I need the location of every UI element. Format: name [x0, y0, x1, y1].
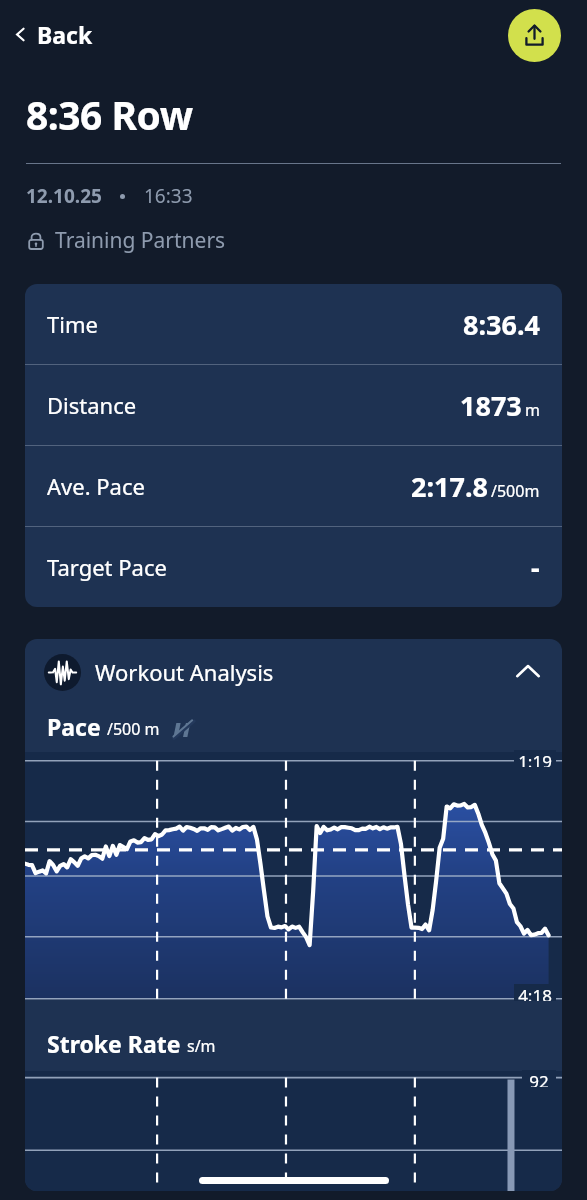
staticText: 1873 — [460, 387, 522, 424]
staticText: Time — [47, 309, 98, 339]
staticText: /500 m — [107, 718, 160, 740]
staticText: 1:19 — [514, 750, 556, 767]
staticText: Workout Analysis — [95, 657, 274, 687]
staticText: 16:33 — [144, 183, 193, 209]
button[interactable]: Workout Analysis — [25, 639, 562, 705]
button[interactable]: Share workout — [508, 9, 561, 62]
button[interactable]: Training Partners — [24, 223, 228, 258]
button[interactable]: Target Pace — [25, 527, 562, 607]
staticText: Target Pace — [47, 552, 167, 582]
staticText: m — [525, 399, 540, 421]
button[interactable]: Back — [0, 13, 107, 56]
staticText: 8:36.4 — [463, 306, 540, 343]
staticText: Training Partners — [55, 226, 226, 255]
staticText: Back — [37, 19, 93, 50]
staticText: Stroke Rate — [47, 1028, 181, 1059]
staticText: s/m — [187, 1035, 216, 1057]
staticText: Ave. Pace — [47, 471, 145, 501]
staticText: Pace — [47, 711, 101, 742]
button[interactable]: Time — [25, 284, 562, 364]
staticText: Distance — [47, 390, 137, 420]
button[interactable]: Distance — [25, 365, 562, 445]
staticText: - — [531, 549, 540, 586]
staticText: /500m — [491, 480, 540, 502]
staticText: 8:36 Row — [26, 88, 193, 141]
staticText: 12.10.25 — [26, 183, 102, 209]
staticText: 92 — [522, 1070, 556, 1087]
button[interactable]: Ave. Pace — [25, 446, 562, 526]
staticText: 2:17.8 — [411, 468, 488, 505]
staticText: 4:18 — [514, 984, 556, 1001]
